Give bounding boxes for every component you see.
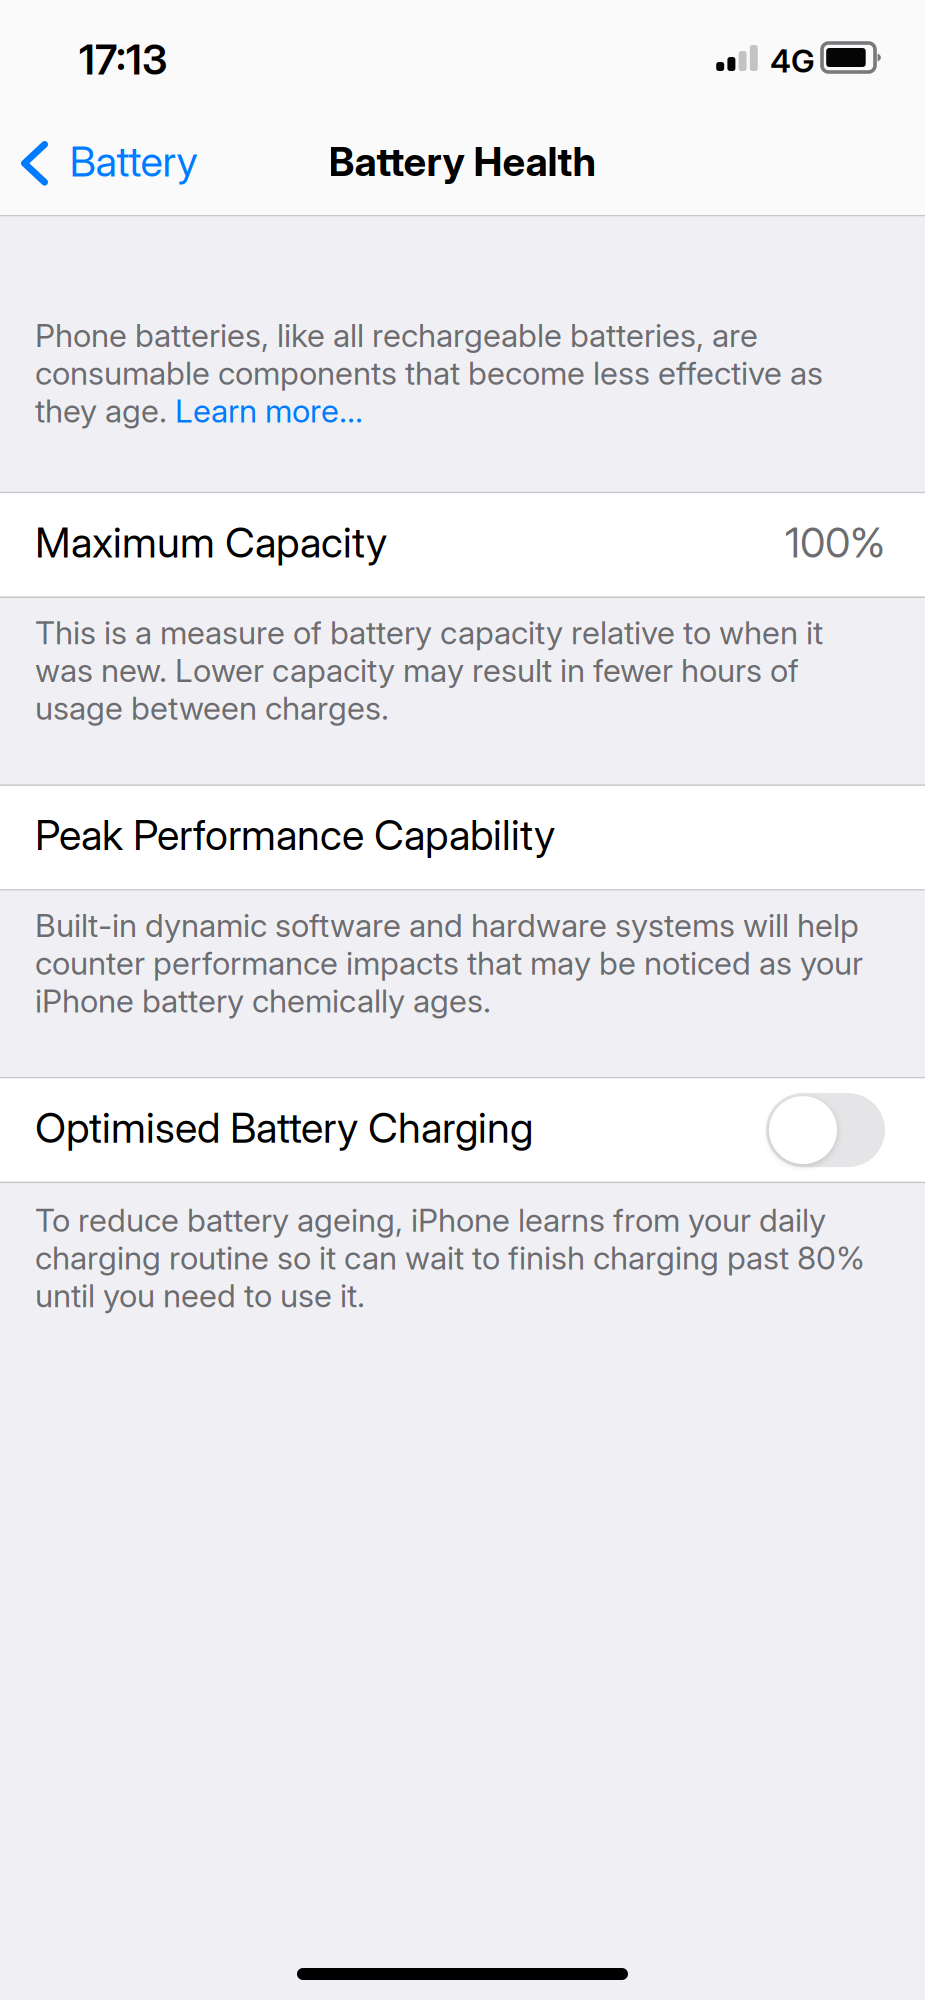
staticText: Optimised Battery Charging (35, 1103, 533, 1152)
staticText: Built-in dynamic software and hardware s… (35, 906, 863, 1020)
staticText: Maximum Capacity (35, 518, 387, 567)
staticText: 100% (785, 518, 885, 567)
staticText: 4G (770, 42, 815, 80)
staticText: Peak Performance Capability (35, 811, 555, 859)
staticText: Phone batteries, like all rechargeable b… (35, 316, 823, 430)
button[interactable]: Peak Performance Capability (0, 786, 925, 889)
staticText: 17:13 (79, 35, 167, 84)
staticText: Battery (69, 137, 197, 186)
button[interactable]: Maximum Capacity (0, 493, 925, 597)
staticText: Battery Health (328, 138, 596, 185)
button[interactable]: Optimised Battery Charging (0, 1078, 925, 1182)
button[interactable]: Battery (0, 117, 213, 209)
staticText: To reduce battery ageing, iPhone learns … (35, 1201, 865, 1314)
staticText: This is a measure of battery capacity re… (35, 614, 823, 727)
